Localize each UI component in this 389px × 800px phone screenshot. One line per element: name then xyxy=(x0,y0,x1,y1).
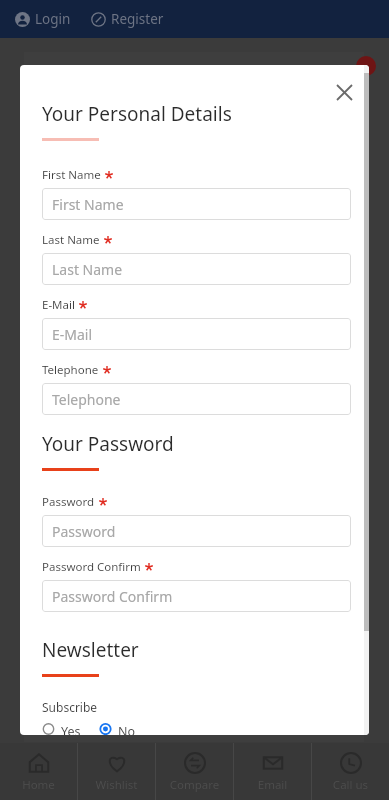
staticText: Call us xyxy=(312,777,389,793)
staticText: Password Confirm xyxy=(52,587,173,606)
button[interactable]: Compare xyxy=(156,743,233,800)
staticText: Home xyxy=(0,777,77,793)
staticText: Newsletter xyxy=(42,637,139,663)
button[interactable]: Password xyxy=(42,515,351,547)
button[interactable]: E-Mail xyxy=(42,318,351,350)
button[interactable]: Email xyxy=(234,743,311,800)
staticText: First Name xyxy=(52,195,124,214)
staticText: Login xyxy=(35,10,71,28)
button[interactable]: Register xyxy=(89,6,166,32)
button[interactable]: Telephone xyxy=(42,383,351,415)
staticText: Password xyxy=(42,494,95,510)
staticText: Compare xyxy=(156,777,233,793)
staticText: No xyxy=(118,723,136,735)
button[interactable]: First Name xyxy=(42,188,351,220)
staticText: Telephone xyxy=(42,362,99,378)
staticText: Last Name xyxy=(42,232,100,248)
button[interactable]: Close xyxy=(329,77,359,107)
staticText: Email xyxy=(234,777,311,793)
button[interactable]: Call us xyxy=(312,743,389,800)
staticText: Subscribe xyxy=(42,699,98,715)
button[interactable]: No xyxy=(99,723,140,735)
button[interactable]: Home xyxy=(0,743,77,800)
staticText: E-Mail xyxy=(42,297,75,313)
button[interactable]: Password Confirm xyxy=(42,580,351,612)
staticText: Password Confirm xyxy=(42,559,141,575)
staticText: Telephone xyxy=(52,390,121,409)
button[interactable]: Login xyxy=(13,6,73,32)
staticText: Last Name xyxy=(52,260,123,279)
staticText: Register xyxy=(111,10,164,28)
staticText: Wishlist xyxy=(78,777,155,793)
button[interactable]: Wishlist xyxy=(78,743,155,800)
staticText: Your Password xyxy=(42,431,174,457)
staticText: Password xyxy=(52,522,116,541)
button[interactable]: Yes xyxy=(42,723,85,735)
staticText: Your Personal Details xyxy=(42,101,232,127)
staticText: First Name xyxy=(42,167,101,183)
button[interactable]: Last Name xyxy=(42,253,351,285)
staticText: Yes xyxy=(61,723,81,735)
staticText: E-Mail xyxy=(52,325,93,344)
